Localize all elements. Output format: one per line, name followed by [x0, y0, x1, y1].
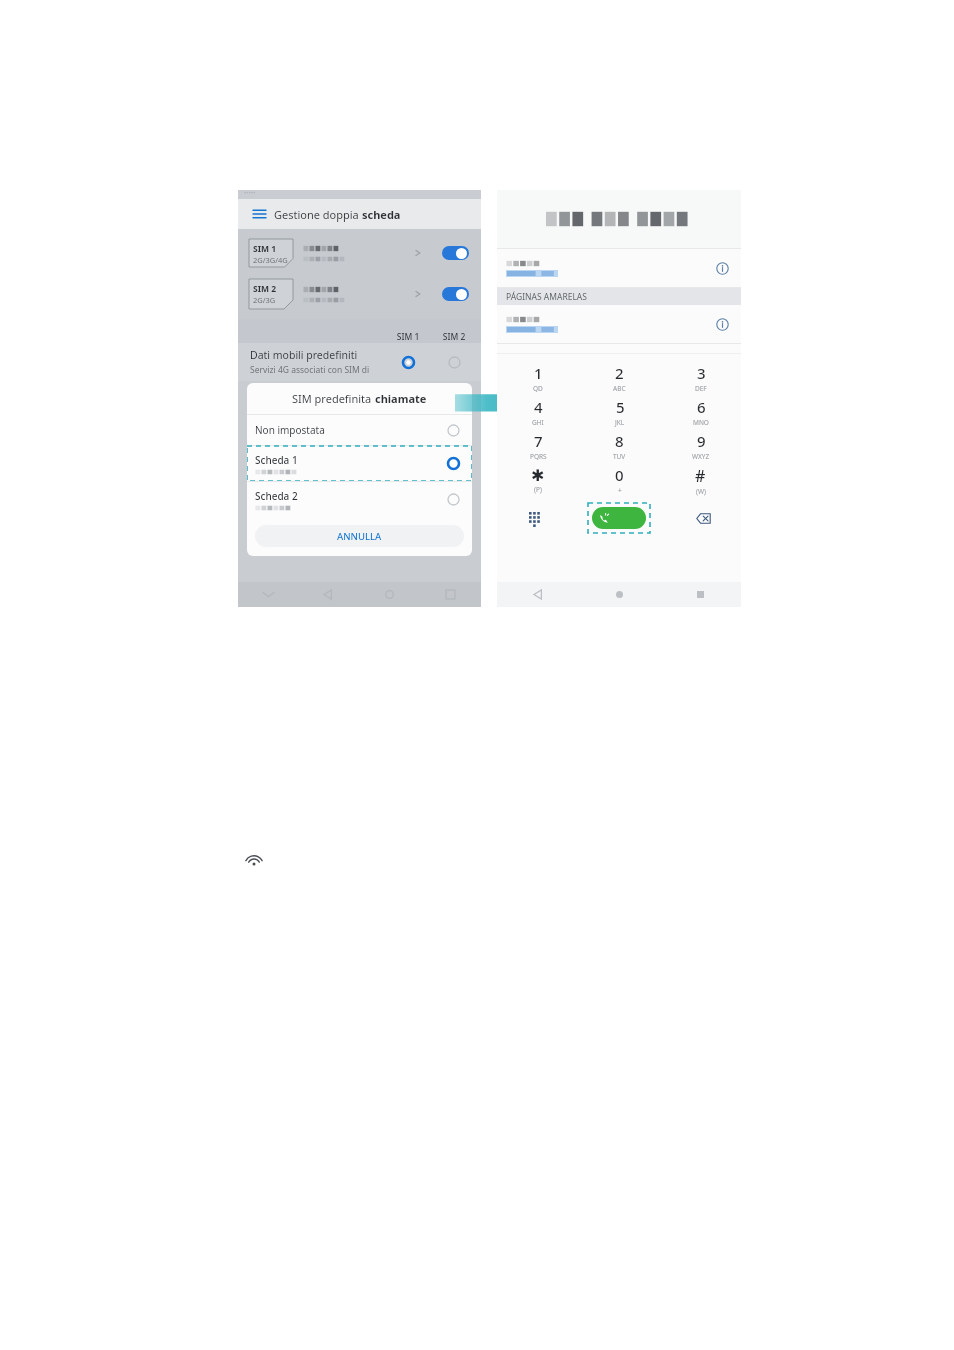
staticText: 8: [615, 431, 624, 451]
staticText: 3: [697, 363, 706, 383]
button[interactable]: Dati mobili predefiniti: [238, 343, 481, 381]
button[interactable]: Back: [497, 582, 579, 607]
staticText: QD: [533, 384, 543, 393]
other: Wi-Fi: [243, 848, 265, 870]
staticText: SIM 2: [431, 331, 477, 343]
staticText: ✱: [531, 466, 545, 485]
staticText: 1: [534, 363, 543, 383]
staticText: TUV: [613, 452, 626, 461]
staticText: SIM 1: [253, 243, 277, 255]
staticText: Scheda 1: [255, 453, 298, 467]
staticText: (W): [696, 487, 706, 496]
button[interactable]: #: [660, 463, 741, 497]
staticText: WXYZ: [692, 452, 710, 461]
staticText: PÁGINAS AMARELAS: [506, 291, 587, 303]
staticText: SIM 1: [385, 331, 431, 343]
staticText: 7: [534, 431, 543, 451]
button[interactable]: SIM 1: [238, 239, 481, 267]
staticText: MNO: [693, 418, 709, 427]
button[interactable]: Home: [579, 582, 660, 607]
button[interactable]: Scheda 1: [247, 446, 472, 481]
button[interactable]: Recents: [660, 582, 741, 607]
button[interactable]: 5: [579, 395, 660, 429]
button[interactable]: Details: [497, 305, 741, 343]
staticText: •••••: [244, 189, 256, 197]
button[interactable]: 8: [579, 429, 660, 463]
staticText: chiamate: [375, 391, 427, 406]
staticText: Gestione doppia: [274, 207, 362, 222]
button[interactable]: 6: [660, 395, 741, 429]
button[interactable]: Call: [592, 507, 646, 529]
staticText: JKL: [615, 418, 625, 427]
staticText: 4: [534, 397, 543, 417]
button[interactable]: Details: [715, 317, 729, 331]
button[interactable]: 0: [579, 463, 660, 497]
button[interactable]: Dialpad: [497, 501, 572, 535]
button[interactable]: Non impostata: [247, 415, 472, 445]
button[interactable]: ANNULLA: [255, 525, 464, 547]
button[interactable]: Toggle SIM 1: [442, 246, 469, 260]
staticText: Scheda 2: [255, 489, 298, 503]
button[interactable]: 3: [660, 361, 741, 395]
staticText: ABC: [613, 384, 626, 393]
staticText: PQRS: [530, 452, 547, 461]
staticText: (P): [534, 485, 542, 494]
staticText: 5: [616, 397, 625, 417]
staticText: Dati mobili predefiniti: [250, 348, 358, 362]
button[interactable]: 2: [579, 361, 660, 395]
button[interactable]: Scheda 2: [247, 482, 472, 517]
staticText: 6: [697, 397, 706, 417]
staticText: +: [618, 486, 622, 495]
button[interactable]: Menu: [250, 205, 268, 223]
staticText: 2G/3G/4G: [253, 255, 288, 265]
staticText: DEF: [695, 384, 707, 393]
staticText: #: [695, 465, 706, 487]
staticText: 2: [615, 363, 624, 383]
button[interactable]: Details: [497, 249, 741, 287]
button[interactable]: 7: [497, 429, 579, 463]
button[interactable]: Details: [715, 261, 729, 275]
button[interactable]: Backspace: [666, 501, 741, 535]
staticText: 2G/3G: [253, 295, 276, 305]
staticText: GHI: [532, 418, 544, 427]
staticText: SIM 2: [253, 283, 277, 295]
staticText: scheda: [362, 207, 401, 222]
button[interactable]: 1: [497, 361, 579, 395]
button[interactable]: ✱: [497, 463, 579, 497]
button[interactable]: Toggle SIM 2: [442, 287, 469, 301]
button[interactable]: 4: [497, 395, 579, 429]
staticText: Non impostata: [255, 423, 447, 437]
button[interactable]: SIM 2: [238, 277, 481, 311]
staticText: SIM predefinita: [292, 391, 375, 406]
staticText: 9: [697, 431, 706, 451]
staticText: ANNULLA: [337, 530, 382, 543]
staticText: Servizi 4G associati con SIM di: [250, 364, 370, 376]
button[interactable]: 9: [660, 429, 741, 463]
staticText: 0: [615, 465, 624, 485]
